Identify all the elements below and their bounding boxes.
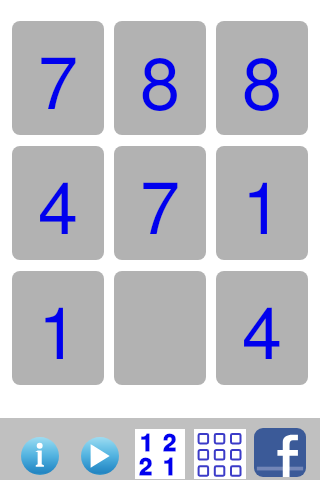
button[interactable]: 8 — [114, 21, 206, 135]
button[interactable]: 4 — [12, 146, 104, 260]
button[interactable] — [114, 271, 206, 385]
button[interactable]: Info — [21, 437, 59, 475]
staticText: 2 — [163, 432, 177, 456]
staticText: 1 — [242, 176, 283, 248]
staticText: 7 — [38, 51, 79, 123]
button[interactable]: Board size — [194, 429, 246, 479]
button[interactable]: Play — [81, 437, 119, 475]
button[interactable]: Facebook — [254, 428, 306, 477]
staticText: 7 — [140, 176, 181, 248]
button[interactable]: 1 — [12, 271, 104, 385]
button[interactable]: 4 — [216, 271, 308, 385]
button[interactable]: Number mode — [135, 429, 185, 479]
staticText: 1 — [38, 301, 79, 373]
button[interactable]: 8 — [216, 21, 308, 135]
button[interactable]: 7 — [114, 146, 206, 260]
staticText: 8 — [140, 51, 181, 123]
staticText: 4 — [38, 176, 79, 248]
staticText: 1 — [140, 432, 154, 456]
button[interactable]: 1 — [216, 146, 308, 260]
staticText: 1 — [163, 456, 177, 480]
button[interactable]: 7 — [12, 21, 104, 135]
staticText: 2 — [139, 456, 153, 480]
staticText: 4 — [242, 301, 283, 373]
staticText: 8 — [242, 51, 283, 123]
